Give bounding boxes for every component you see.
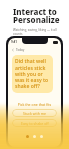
staticText: Watching, saving, liking — it all counts	[13, 28, 61, 36]
staticText: Interact to Personalize	[13, 6, 60, 25]
staticText: Stuck with me	[23, 111, 47, 116]
other: Back	[11, 48, 15, 52]
button[interactable]: Stuck with me	[12, 109, 57, 117]
staticText: Easy to shake off	[21, 121, 49, 126]
button[interactable]: Easy to shake off	[12, 119, 57, 127]
staticText: Pick the one that fits	[12, 102, 57, 107]
staticText: Did that well articles stick with you or…	[15, 58, 50, 90]
staticText: 9:41	[11, 40, 17, 44]
staticText: Today	[16, 48, 25, 52]
